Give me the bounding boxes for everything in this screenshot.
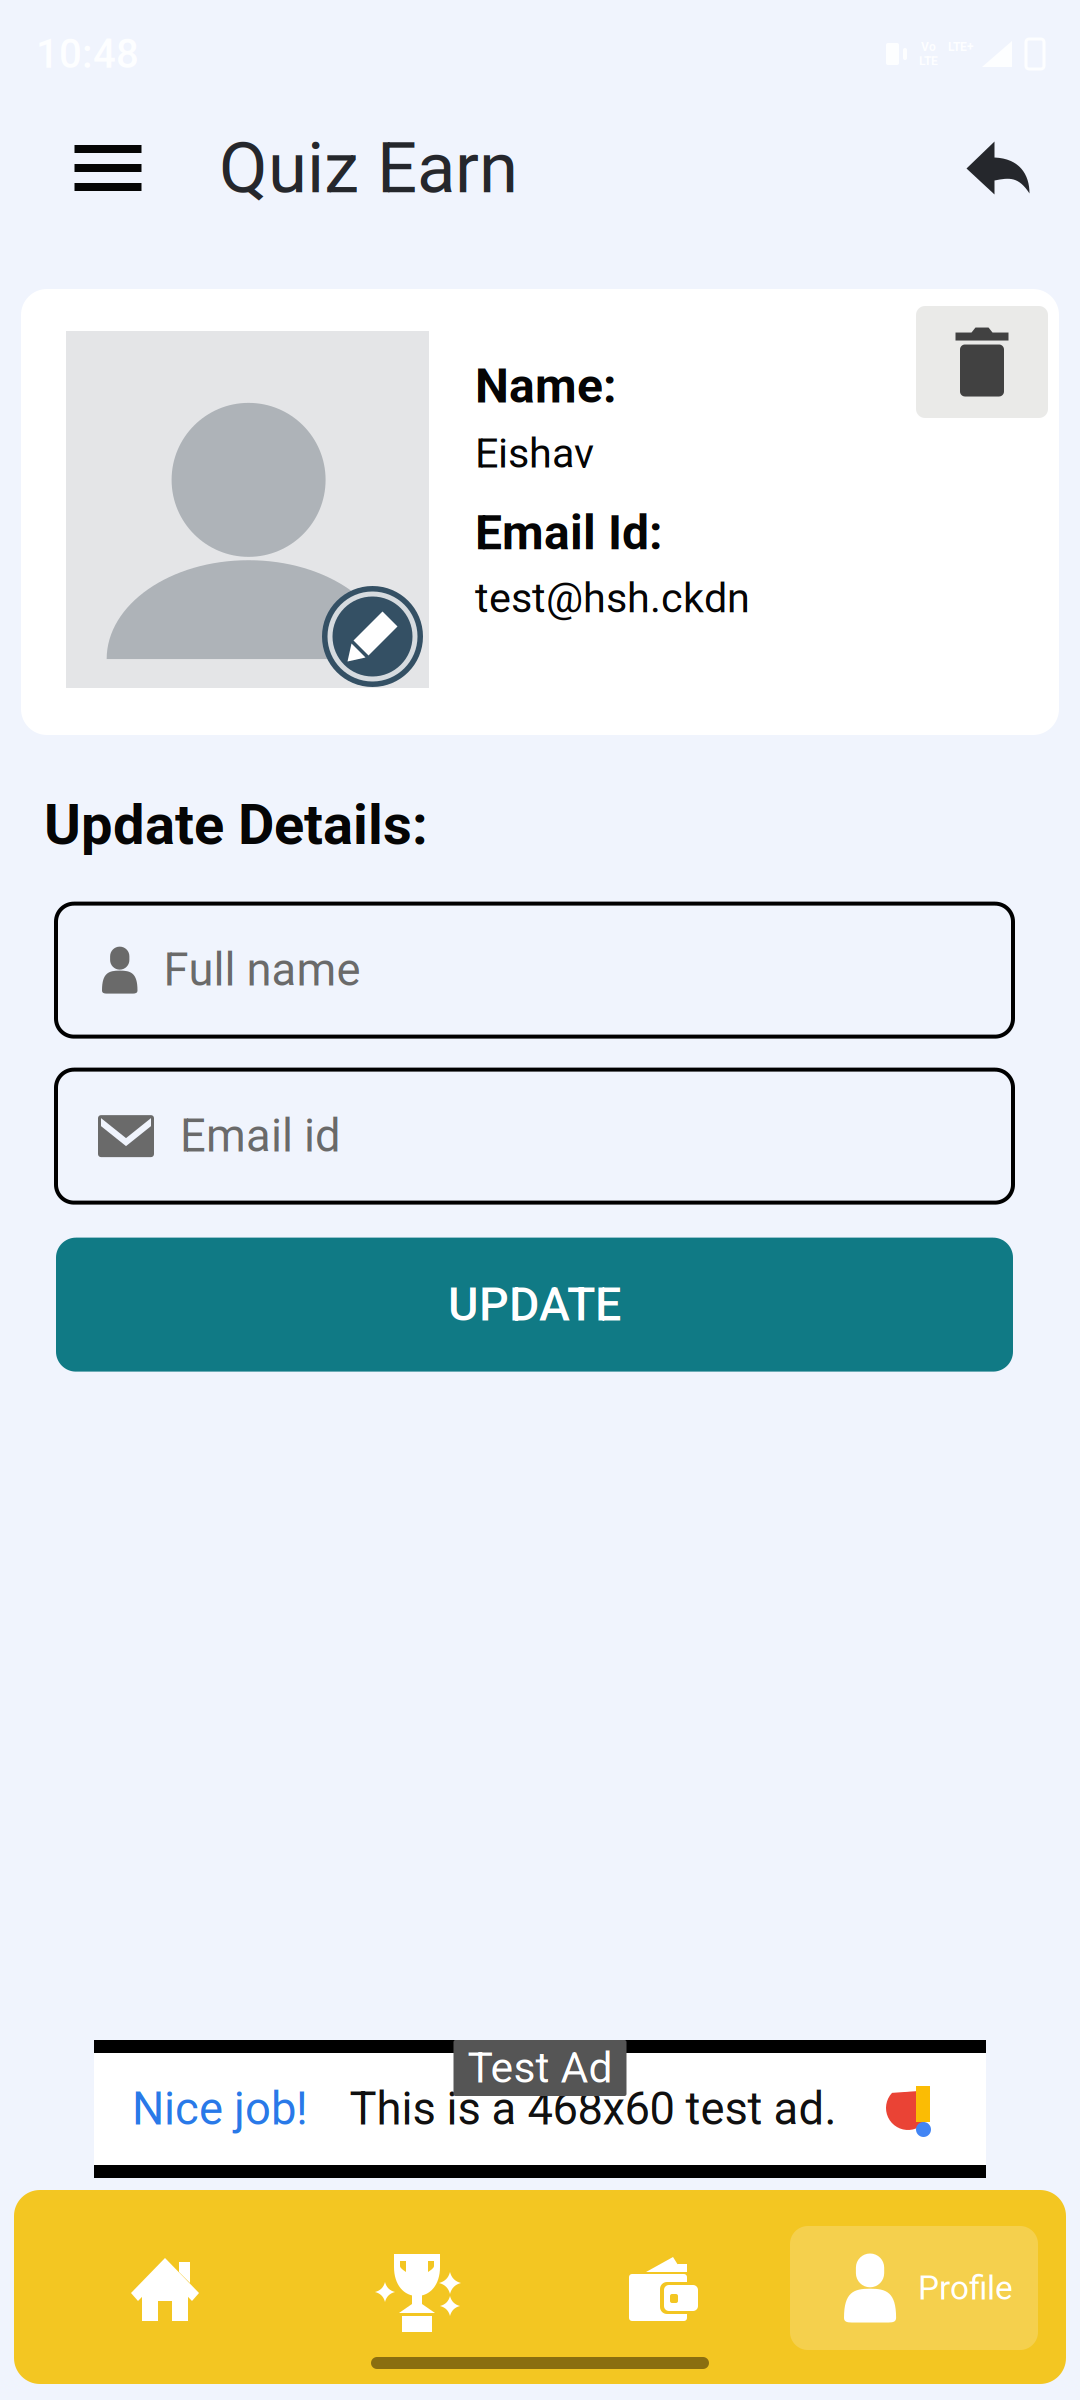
button[interactable]: Home xyxy=(131,2255,199,2321)
staticText: test@hsh.ckdn xyxy=(475,574,750,622)
button[interactable]: Delete account xyxy=(916,306,1048,418)
button[interactable]: Menu xyxy=(54,108,162,228)
staticText: LTE xyxy=(919,54,938,68)
staticText: Update Details: xyxy=(44,792,428,858)
staticText: This is a 468x60 test ad. xyxy=(349,2082,836,2135)
staticText: 10:48 xyxy=(36,31,139,77)
button[interactable]: UPDATE xyxy=(0,1203,1080,1372)
staticText: Eishav xyxy=(475,429,594,478)
button[interactable]: Wallet xyxy=(629,2255,698,2321)
staticText: Email Id: xyxy=(475,505,663,561)
staticText: Email id xyxy=(180,1110,341,1163)
staticText: Test Ad xyxy=(467,2043,612,2093)
staticText: Nice job! xyxy=(132,2082,308,2135)
staticText: Name: xyxy=(475,358,617,414)
button[interactable]: Leaderboard xyxy=(383,2254,451,2332)
button[interactable]: Back xyxy=(943,108,1053,228)
staticText: UPDATE xyxy=(448,1277,621,1332)
staticText: LTE+ xyxy=(948,40,974,54)
staticText: Profile xyxy=(918,2268,1013,2308)
staticText: Vo xyxy=(921,40,936,54)
button[interactable]: Profile xyxy=(790,2226,1038,2350)
staticText: Full name xyxy=(163,944,360,997)
staticText: Quiz Earn xyxy=(219,127,518,209)
